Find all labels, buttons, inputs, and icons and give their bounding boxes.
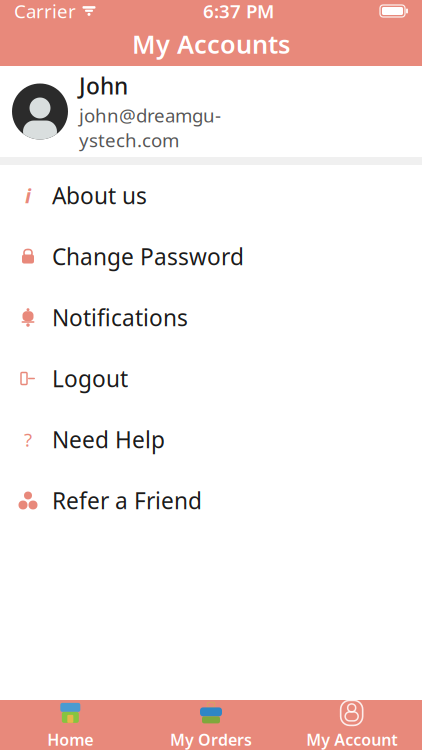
button[interactable]: Refer a Friend: [0, 470, 422, 531]
staticText: 6:37 PM: [203, 0, 274, 23]
button[interactable]: Home: [0, 700, 141, 750]
staticText: john@dreamguystech.com: [79, 103, 221, 152]
button[interactable]: My Account: [281, 700, 422, 750]
button[interactable]: ?: [0, 409, 422, 470]
button[interactable]: Logout: [0, 348, 422, 409]
staticText: My Accounts: [132, 27, 290, 61]
staticText: Refer a Friend: [52, 485, 202, 515]
staticText: i: [25, 182, 31, 209]
button[interactable]: My Orders: [141, 700, 281, 750]
staticText: About us: [52, 180, 147, 210]
staticText: My Account: [306, 729, 397, 750]
staticText: Need Help: [52, 424, 165, 454]
staticText: Logout: [52, 363, 128, 393]
button[interactable]: Notifications: [0, 287, 422, 348]
staticText: Carrier: [14, 0, 76, 23]
staticText: ?: [24, 427, 32, 452]
staticText: Home: [47, 729, 93, 750]
staticText: Notifications: [52, 302, 188, 332]
button[interactable]: i: [0, 165, 422, 226]
button[interactable]: Change Password: [0, 226, 422, 287]
staticText: John: [79, 71, 128, 101]
staticText: My Orders: [170, 729, 252, 750]
staticText: Change Password: [52, 241, 244, 271]
